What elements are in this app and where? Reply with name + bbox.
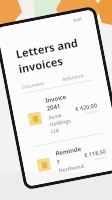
staticText: Reference [62, 72, 85, 82]
staticText: Document [22, 80, 45, 90]
staticText: Northwind Trading [58, 162, 87, 173]
staticText: Invoice 2041 [44, 92, 75, 113]
staticText: € 420,00 [75, 101, 98, 112]
staticText: 9:41 [73, 15, 83, 23]
staticText: Letters and invoices [14, 33, 89, 76]
button[interactable]: Invoice 2041 [10, 78, 112, 149]
button[interactable]: Reminder [20, 131, 112, 187]
staticText: € 118,50 [84, 147, 106, 158]
staticText: Acme Holdings Ltd [48, 109, 79, 135]
staticText: Reminder [55, 145, 85, 166]
